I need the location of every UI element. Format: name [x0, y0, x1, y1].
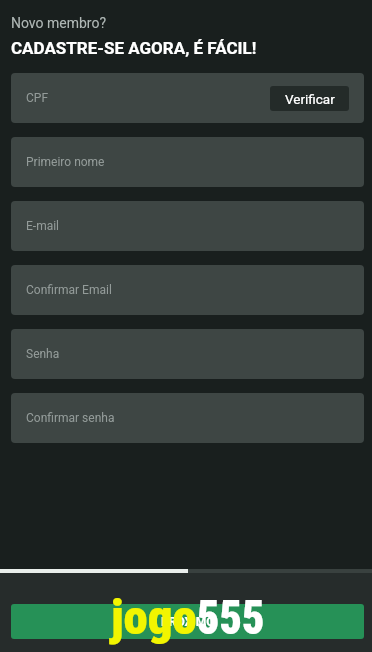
button[interactable]: Confirmar senha	[11, 393, 364, 443]
staticText: 555	[197, 589, 265, 646]
staticText: Confirmar senha	[26, 411, 115, 425]
staticText: CPF	[26, 91, 49, 105]
button[interactable]: CPF	[11, 73, 364, 123]
staticText: Primeiro nome	[26, 155, 105, 169]
staticText: Verificar	[285, 91, 335, 107]
staticText: Senha	[26, 347, 60, 361]
staticText: Novo membro?	[11, 15, 107, 31]
button[interactable]: E-mail	[11, 201, 364, 251]
button[interactable]: Senha	[11, 329, 364, 379]
staticText: Confirmar Email	[26, 283, 112, 297]
button[interactable]: Confirmar Email	[11, 265, 364, 315]
button[interactable]: Verificar	[270, 86, 349, 111]
button[interactable]: PRÓXIMO	[11, 604, 364, 639]
staticText: jogo	[111, 589, 197, 646]
staticText: PRÓXIMO	[161, 615, 215, 629]
button[interactable]: Primeiro nome	[11, 137, 364, 187]
staticText: E-mail	[26, 219, 60, 233]
staticText: CADASTRE-SE AGORA, É FÁCIL!	[11, 38, 257, 58]
